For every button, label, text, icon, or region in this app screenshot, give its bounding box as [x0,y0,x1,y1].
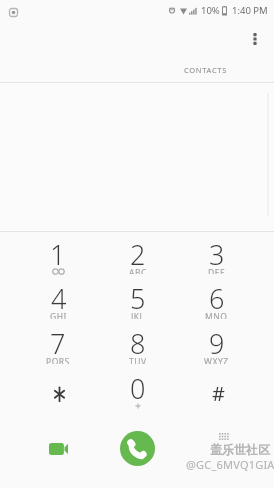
staticText: 9 [209,325,225,362]
staticText: MNO [205,311,228,319]
staticText: 8 [130,325,146,362]
button[interactable]: Call [120,431,155,466]
staticText: 6 [209,280,225,317]
staticText: 7 [50,325,66,362]
staticText: 1 [50,236,66,273]
button[interactable]: 9 [177,325,256,370]
button[interactable]: 5 [98,280,177,325]
staticText: GHI [50,311,67,319]
button[interactable]: 2 [98,236,177,280]
staticText: 0 [130,370,146,407]
button[interactable]: # [177,370,256,415]
button[interactable] [18,370,98,415]
button[interactable]: 1 [18,236,98,280]
button[interactable]: 7 [18,325,98,370]
staticText: @GC_6MVQ1GIA [186,457,274,472]
staticText: PQRS [46,356,70,364]
staticText: 2 [130,236,146,273]
staticText: 3 [209,236,225,273]
staticText: TUV [129,356,147,364]
staticText: WXYZ [204,356,229,364]
button[interactable]: 4 [18,280,98,325]
staticText: 4 [51,280,67,317]
staticText: JKL [131,311,145,319]
button[interactable]: 0 [98,370,177,415]
staticText: CONTACTS [184,65,228,75]
staticText: 盖乐世社区 [210,442,270,457]
button[interactable]: 8 [98,325,177,370]
button[interactable]: 6 [177,280,256,325]
button[interactable]: CONTACTS [137,58,274,82]
staticText: ABC [129,267,147,274]
staticText: DEF [208,267,225,274]
button[interactable]: More options [242,26,268,52]
button[interactable]: Video call [41,432,75,466]
staticText: 5 [130,280,146,317]
staticText: 1:40 PM [232,4,268,17]
button[interactable]: 3 [177,236,256,280]
staticText: 10% [201,4,220,17]
staticText: # [212,380,225,407]
